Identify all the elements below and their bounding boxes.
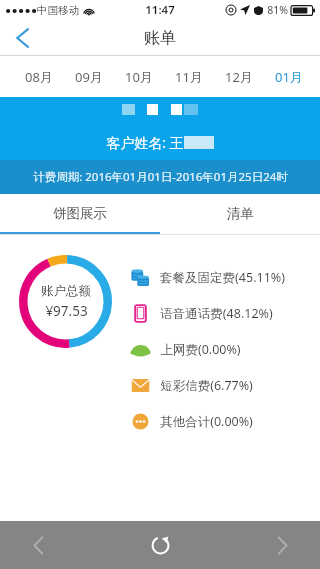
button[interactable]: 套餐及固定费(45.11%) — [131, 259, 320, 295]
button[interactable]: 短彩信费(6.77%) — [131, 367, 320, 403]
staticText: 其他合计(0.00%) — [160, 413, 253, 430]
button[interactable]: 饼图展示 — [0, 194, 160, 232]
button[interactable]: 01月 — [264, 56, 314, 97]
staticText: 短彩信费(6.77%) — [160, 377, 253, 394]
staticText: 客户姓名: 王 — [106, 133, 184, 152]
button[interactable]: Back — [16, 523, 60, 567]
staticText: 账单 — [144, 28, 176, 48]
button[interactable]: 10月 — [114, 56, 164, 97]
staticText: 账户总额 — [41, 283, 91, 299]
staticText: 10月 — [125, 68, 153, 86]
button[interactable]: 11月 — [164, 56, 214, 97]
staticText: ¥97.53 — [45, 302, 88, 320]
button[interactable]: 09月 — [64, 56, 114, 97]
staticText: 09月 — [75, 68, 103, 86]
button[interactable]: Back — [0, 20, 44, 56]
button[interactable]: 上网费(0.00%) — [131, 331, 320, 367]
staticText: 81% — [267, 3, 288, 17]
staticText: 上网费(0.00%) — [160, 341, 241, 358]
staticText: 套餐及固定费(45.11%) — [160, 269, 285, 286]
staticText: 08月 — [25, 68, 53, 86]
button[interactable]: Forward — [260, 523, 304, 567]
staticText: 12月 — [225, 68, 253, 86]
staticText: 饼图展示 — [53, 205, 107, 222]
button[interactable]: 语音通话费(48.12%) — [131, 295, 320, 331]
staticText: 11月 — [175, 68, 203, 86]
button[interactable]: 清单 — [160, 194, 320, 232]
staticText: 清单 — [227, 205, 254, 222]
staticText: 01月 — [275, 68, 303, 86]
button[interactable]: 其他合计(0.00%) — [131, 403, 320, 439]
staticText: 11:47 — [145, 2, 175, 18]
staticText: 语音通话费(48.12%) — [160, 305, 273, 322]
button[interactable]: 08月 — [14, 56, 64, 97]
button[interactable]: Refresh — [138, 523, 182, 567]
staticText: 计费周期: 2016年01月01日-2016年01月25日24时 — [33, 169, 288, 185]
staticText: 中国移动 — [37, 4, 79, 17]
button[interactable]: 12月 — [214, 56, 264, 97]
